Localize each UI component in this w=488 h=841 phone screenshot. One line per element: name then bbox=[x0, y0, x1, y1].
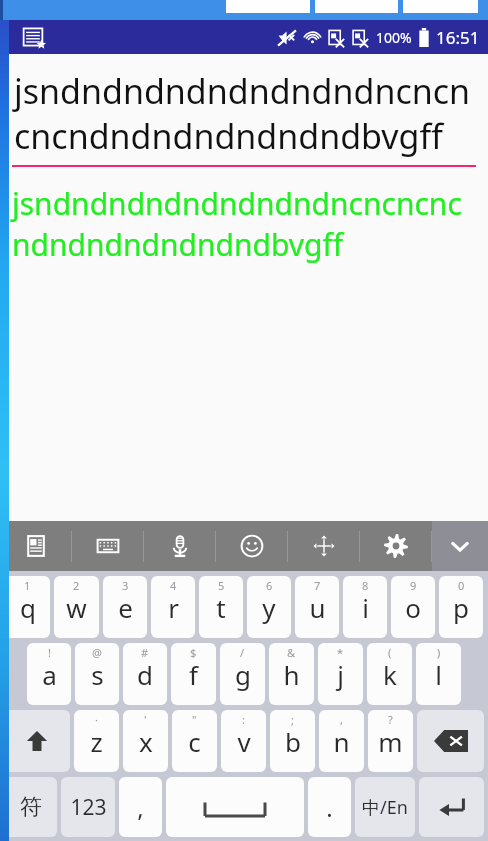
staticText: i bbox=[362, 590, 369, 625]
staticText: f bbox=[189, 657, 198, 692]
button[interactable]: b bbox=[270, 710, 315, 772]
staticText: u bbox=[309, 590, 326, 625]
staticText: s bbox=[91, 657, 104, 692]
staticText: 100% bbox=[376, 28, 412, 47]
staticText: w bbox=[66, 590, 87, 625]
staticText: y bbox=[262, 590, 276, 625]
staticText: 中/En bbox=[362, 795, 408, 820]
button[interactable]: q bbox=[5, 576, 50, 638]
staticText: jsndndndndndndndndncncncncndndndndndndnd… bbox=[14, 68, 478, 158]
staticText: @ bbox=[92, 645, 102, 660]
button[interactable]: Emoji bbox=[216, 521, 288, 571]
button[interactable]: z bbox=[74, 710, 119, 772]
staticText: ; bbox=[291, 712, 294, 727]
button[interactable]: c bbox=[172, 710, 217, 772]
staticText: t bbox=[216, 590, 226, 625]
button[interactable]: 符 bbox=[4, 777, 57, 837]
button[interactable]: d bbox=[123, 643, 167, 705]
button[interactable]: w bbox=[54, 576, 99, 638]
staticText: m bbox=[378, 724, 403, 759]
button[interactable]: j bbox=[318, 643, 363, 705]
staticText: , bbox=[340, 712, 343, 727]
button[interactable]: g bbox=[220, 643, 265, 705]
button[interactable]: h bbox=[269, 643, 314, 705]
button[interactable]: a bbox=[27, 643, 71, 705]
staticText: q bbox=[20, 590, 36, 625]
staticText: o bbox=[405, 590, 421, 625]
staticText: jsndndndndndndndndncncncncndndndndndndnd… bbox=[12, 183, 480, 265]
staticText: & bbox=[287, 645, 296, 660]
button[interactable]: Shift bbox=[4, 710, 70, 772]
staticText: " bbox=[192, 712, 197, 727]
staticText: 2 bbox=[73, 578, 80, 593]
staticText: · bbox=[95, 712, 98, 727]
button[interactable]: p bbox=[439, 576, 483, 638]
button[interactable]: Clipboard bbox=[0, 521, 72, 571]
staticText: z bbox=[90, 724, 103, 759]
button[interactable]: , bbox=[119, 777, 162, 837]
button[interactable]: f bbox=[171, 643, 216, 705]
button[interactable]: k bbox=[367, 643, 412, 705]
button[interactable]: Settings bbox=[360, 521, 432, 571]
staticText: ' bbox=[144, 712, 147, 727]
button[interactable]: y bbox=[247, 576, 291, 638]
button[interactable]: n bbox=[319, 710, 364, 772]
staticText: a bbox=[42, 657, 57, 692]
staticText: ( bbox=[388, 645, 392, 660]
staticText: n bbox=[333, 724, 350, 759]
button[interactable]: o bbox=[391, 576, 435, 638]
staticText: h bbox=[283, 657, 300, 692]
staticText: 符 bbox=[20, 793, 42, 821]
staticText: 1 bbox=[24, 578, 31, 593]
staticText: 0 bbox=[458, 578, 465, 593]
staticText: x bbox=[139, 724, 153, 759]
staticText: 3 bbox=[122, 578, 129, 593]
staticText: v bbox=[237, 724, 251, 759]
staticText: : bbox=[242, 712, 245, 727]
staticText: 8 bbox=[362, 578, 369, 593]
staticText: * bbox=[337, 645, 344, 660]
staticText: 5 bbox=[218, 578, 225, 593]
button[interactable]: Keyboard layout bbox=[72, 521, 144, 571]
staticText: ? bbox=[388, 712, 393, 727]
button[interactable]: x bbox=[123, 710, 168, 772]
staticText: c bbox=[188, 724, 201, 759]
staticText: 123 bbox=[70, 793, 107, 822]
staticText: / bbox=[240, 645, 245, 660]
button[interactable]: r bbox=[151, 576, 195, 638]
button[interactable]: t bbox=[199, 576, 243, 638]
staticText: ! bbox=[48, 645, 51, 660]
staticText: p bbox=[453, 590, 469, 625]
button[interactable]: Cursor control bbox=[288, 521, 360, 571]
staticText: r bbox=[168, 590, 179, 625]
staticText: 7 bbox=[314, 578, 321, 593]
button[interactable]: 123 bbox=[61, 777, 115, 837]
staticText: d bbox=[137, 657, 153, 692]
staticText: e bbox=[118, 590, 133, 625]
button[interactable]: Enter bbox=[419, 777, 484, 837]
button[interactable]: i bbox=[343, 576, 387, 638]
button[interactable]: m bbox=[368, 710, 413, 772]
button[interactable]: Voice input bbox=[144, 521, 216, 571]
button[interactable]: 中/En bbox=[355, 777, 415, 837]
button[interactable]: e bbox=[103, 576, 147, 638]
button[interactable]: Backspace bbox=[417, 710, 484, 772]
staticText: # bbox=[141, 645, 149, 660]
staticText: b bbox=[285, 724, 301, 759]
staticText: j bbox=[337, 657, 344, 692]
button[interactable]: Space bbox=[166, 777, 304, 837]
staticText: . bbox=[326, 791, 333, 824]
button[interactable]: u bbox=[295, 576, 339, 638]
button[interactable]: v bbox=[221, 710, 266, 772]
button[interactable]: s bbox=[75, 643, 119, 705]
button[interactable]: Hide keyboard bbox=[432, 521, 488, 571]
button[interactable]: l bbox=[416, 643, 461, 705]
staticText: $ bbox=[190, 645, 197, 660]
staticText: g bbox=[235, 657, 251, 692]
button[interactable]: . bbox=[308, 777, 351, 837]
staticText: k bbox=[383, 657, 397, 692]
staticText: , bbox=[137, 791, 144, 824]
staticText: ) bbox=[437, 645, 441, 660]
staticText: l bbox=[435, 657, 442, 692]
staticText: 16:51 bbox=[436, 26, 480, 49]
